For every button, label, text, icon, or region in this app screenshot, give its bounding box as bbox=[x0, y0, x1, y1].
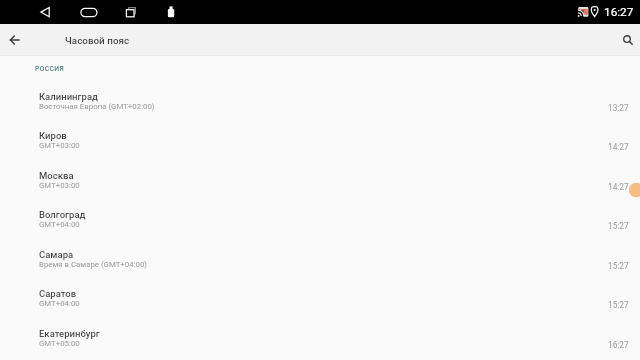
staticText: Калининград bbox=[39, 91, 98, 102]
staticText: Часовой пояс bbox=[65, 35, 130, 47]
button[interactable]: Back bbox=[0, 24, 30, 56]
staticText: 15:27 bbox=[608, 300, 629, 310]
staticText: 14:27 bbox=[608, 142, 629, 152]
staticText: 13:27 bbox=[608, 103, 629, 113]
staticText: РОССИЯ bbox=[35, 65, 64, 73]
staticText: Волгоград bbox=[39, 209, 86, 220]
staticText: GMT+03:00 bbox=[39, 181, 80, 190]
button[interactable]: Search bbox=[616, 24, 640, 56]
staticText: GMT+04:00 bbox=[39, 299, 80, 308]
staticText: Время в Самаре (GMT+04:00) bbox=[39, 260, 148, 269]
staticText: 16:27 bbox=[608, 340, 629, 350]
button[interactable]: Калининград bbox=[0, 91, 640, 130]
staticText: GMT+05:00 bbox=[39, 339, 80, 348]
button[interactable]: Волгоград bbox=[0, 209, 640, 248]
staticText: GMT+04:00 bbox=[39, 220, 80, 229]
button[interactable]: Саратов bbox=[0, 288, 640, 327]
staticText: Екатеринбург bbox=[39, 328, 100, 339]
button[interactable]: Самара bbox=[0, 249, 640, 288]
button[interactable]: Москва bbox=[0, 170, 640, 209]
staticText: 14:27 bbox=[608, 182, 629, 192]
staticText: 16:27 bbox=[604, 5, 634, 19]
button[interactable]: Екатеринбург bbox=[0, 328, 640, 360]
staticText: Самара bbox=[39, 249, 74, 260]
staticText: Киров bbox=[39, 130, 67, 141]
button[interactable]: Киров bbox=[0, 130, 640, 169]
staticText: Восточная Европа (GMT+02:00) bbox=[39, 102, 155, 111]
staticText: 15:27 bbox=[608, 221, 629, 231]
staticText: Москва bbox=[39, 170, 74, 181]
staticText: Саратов bbox=[39, 288, 77, 299]
staticText: 15:27 bbox=[608, 261, 629, 271]
staticText: GMT+03:00 bbox=[39, 141, 80, 150]
